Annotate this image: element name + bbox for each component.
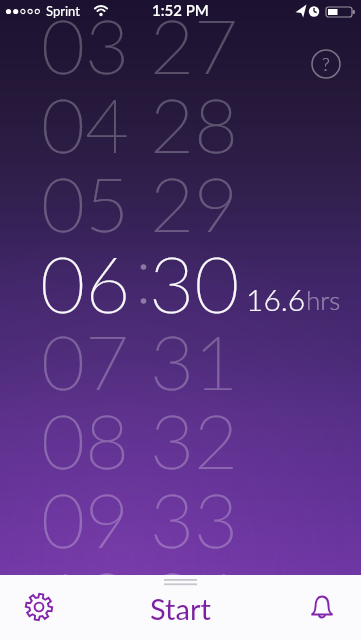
staticText: 08	[41, 394, 130, 484]
staticText: Sprint	[46, 3, 80, 19]
staticText: 16.6	[246, 281, 306, 317]
staticText: 33	[150, 473, 239, 563]
button[interactable]: ?	[308, 46, 344, 82]
staticText: 1:52 PM	[152, 1, 209, 19]
staticText: 28	[150, 78, 239, 168]
staticText: 03	[41, 0, 130, 89]
staticText: 32	[150, 394, 239, 484]
button[interactable]: Start	[150, 591, 211, 626]
staticText: ?	[322, 53, 330, 75]
staticText: 29	[150, 157, 239, 247]
staticText: 34	[150, 552, 239, 640]
button[interactable]	[304, 590, 340, 626]
button[interactable]	[21, 589, 57, 625]
staticText: Start	[150, 591, 211, 626]
staticText: 27	[150, 0, 239, 89]
staticText: 07	[41, 315, 130, 405]
staticText: 06	[40, 236, 131, 326]
staticText: 31	[150, 315, 239, 405]
staticText: 30	[149, 236, 240, 326]
staticText: 04	[41, 78, 130, 168]
staticText: hrs	[306, 284, 341, 315]
staticText: 09	[41, 473, 130, 563]
staticText: 10	[41, 552, 130, 640]
staticText: 05	[41, 157, 130, 247]
